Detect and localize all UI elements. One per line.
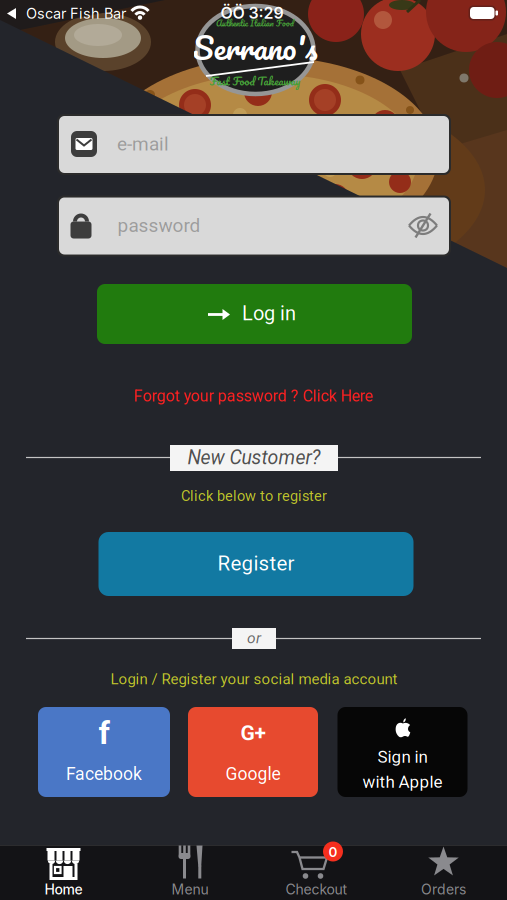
button[interactable]: e-mail	[57, 114, 451, 175]
staticText: Google	[225, 764, 280, 784]
staticText: password	[117, 214, 200, 237]
staticText: Orders	[421, 881, 466, 898]
button[interactable]: Facebook	[38, 707, 170, 797]
staticText: Home	[44, 881, 82, 898]
staticText: 0	[328, 844, 337, 860]
button[interactable]: Register	[98, 532, 413, 596]
staticText: ÖÖ 3:29	[220, 3, 283, 23]
staticText: G+	[240, 721, 265, 745]
staticText: Checkout	[285, 881, 347, 898]
button[interactable]: Orders	[380, 845, 507, 900]
staticText: New Customer?	[187, 446, 320, 469]
button[interactable]: Back to Oscar Fish Bar	[0, 0, 150, 27]
staticText: with Apple	[362, 772, 442, 792]
button[interactable]: password	[57, 195, 451, 256]
staticText: Log in	[242, 302, 296, 325]
staticText: or	[247, 629, 261, 647]
staticText: f	[98, 714, 109, 752]
staticText: Click below to register	[181, 487, 327, 504]
staticText: Serrano's	[192, 20, 317, 74]
staticText: Menu	[171, 881, 208, 898]
staticText: e-mail	[117, 133, 169, 155]
button[interactable]: Checkout	[253, 845, 380, 900]
staticText: Sign in	[377, 747, 427, 767]
staticText: Oscar Fish Bar	[26, 5, 126, 22]
button[interactable]: Google	[188, 707, 318, 797]
button[interactable]: Log in	[97, 284, 412, 344]
staticText: Facebook	[66, 764, 142, 784]
staticText: Authentic Italian Food	[216, 16, 294, 30]
staticText: Register	[217, 551, 294, 575]
staticText: Forgot your password ? Click Here	[133, 387, 372, 405]
button[interactable]: Sign in with Apple	[337, 707, 467, 797]
button[interactable]: Forgot your password ? Click Here	[133, 387, 372, 405]
staticText: Fast Food Takeaway	[209, 72, 300, 90]
button[interactable]: Menu	[126, 845, 253, 900]
button[interactable]: Home	[0, 845, 127, 900]
staticText: Login / Register your social media accou…	[110, 670, 397, 688]
